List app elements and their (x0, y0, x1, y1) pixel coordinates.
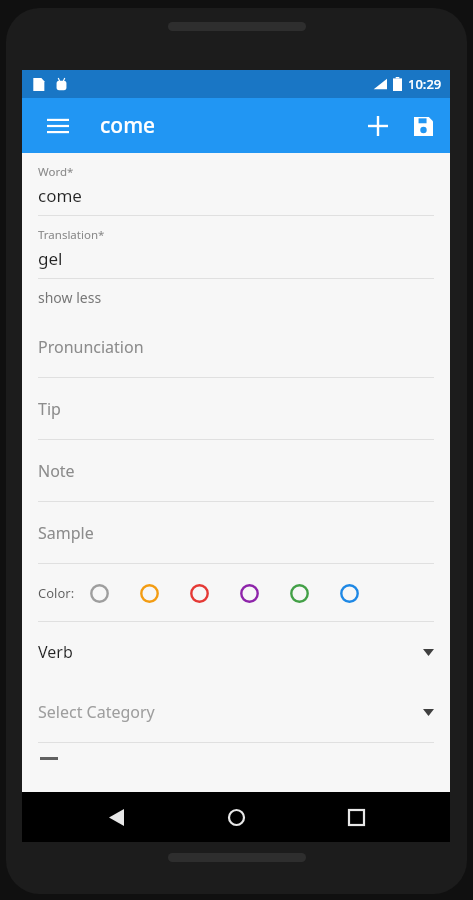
staticText: Verb (38, 641, 73, 663)
staticText: gel (38, 247, 63, 270)
button[interactable]: Open navigation menu (36, 104, 80, 148)
button[interactable]: Select Category (22, 682, 450, 742)
button[interactable]: Select colour (190, 573, 240, 613)
button[interactable]: Pronunciation (22, 316, 450, 377)
staticText: Color: (38, 584, 75, 602)
staticText: Word* (38, 164, 74, 180)
staticText: 10:29 (408, 75, 442, 93)
staticText: show less (38, 288, 102, 307)
button[interactable]: Sample (22, 502, 450, 563)
button[interactable]: Word* (22, 153, 450, 215)
button[interactable]: Select colour (340, 573, 390, 613)
staticText: Select Category (38, 701, 155, 723)
button[interactable]: Save (402, 102, 444, 150)
button[interactable]: Recent apps (330, 792, 382, 842)
button[interactable]: show less (22, 279, 450, 316)
button[interactable]: Select colour (290, 573, 340, 613)
button[interactable]: Note (22, 440, 450, 501)
button[interactable]: Tip (22, 378, 450, 439)
staticText: Note (38, 460, 75, 482)
button[interactable]: Select colour (240, 573, 290, 613)
button[interactable]: Home (210, 792, 262, 842)
button[interactable]: Translation* (22, 216, 450, 278)
button[interactable] (22, 743, 450, 773)
staticText: come (100, 111, 156, 140)
button[interactable]: Select colour (140, 573, 190, 613)
staticText: come (38, 184, 82, 207)
staticText: Tip (38, 398, 61, 420)
button[interactable]: Back (90, 792, 142, 842)
staticText: Sample (38, 522, 94, 544)
button[interactable]: Verb (22, 622, 450, 682)
button[interactable]: Select colour (90, 573, 140, 613)
staticText: Translation* (38, 227, 105, 243)
button[interactable]: Add (354, 102, 402, 150)
staticText: Pronunciation (38, 336, 144, 358)
